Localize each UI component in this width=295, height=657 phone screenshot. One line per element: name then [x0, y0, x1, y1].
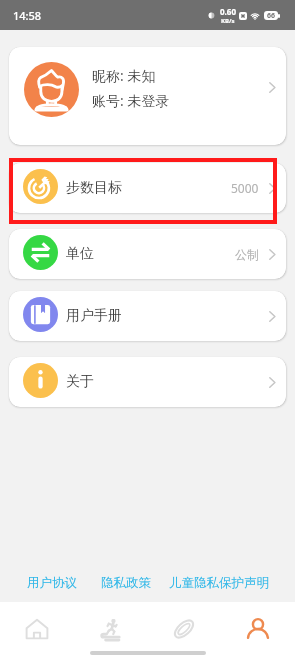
staticText: 关于: [66, 373, 94, 391]
staticText: 用户手册: [66, 307, 122, 325]
staticText: 隐私政策: [101, 575, 151, 591]
staticText: 0.60: [220, 6, 236, 17]
staticText: 步数目标: [66, 179, 122, 197]
staticText: 昵称: 未知: [92, 66, 156, 85]
button[interactable]: Sleep: [147, 602, 221, 655]
button[interactable]: 隐私政策: [101, 575, 151, 591]
button[interactable]: 关于: [9, 357, 286, 407]
staticText: 14:58: [13, 8, 42, 23]
staticText: 66: [267, 11, 276, 20]
staticText: 儿童隐私保护声明: [169, 575, 269, 591]
staticText: KB/s: [221, 17, 235, 25]
staticText: 账号: 未登录: [92, 91, 170, 110]
staticText: 用户协议: [27, 575, 77, 591]
button[interactable]: 用户手册: [9, 291, 286, 341]
button[interactable]: Home: [0, 602, 73, 655]
button[interactable]: 用户协议: [27, 575, 77, 591]
button[interactable]: Exercise: [73, 602, 147, 655]
button[interactable]: 昵称: 未知: [9, 47, 286, 145]
staticText: 单位: [66, 245, 94, 263]
staticText: 公制: [235, 247, 259, 262]
button[interactable]: Profile: [221, 602, 295, 655]
button[interactable]: 单位: [9, 229, 286, 279]
staticText: 5000: [231, 180, 259, 196]
button[interactable]: 步数目标: [9, 163, 286, 213]
button[interactable]: 儿童隐私保护声明: [169, 575, 269, 591]
